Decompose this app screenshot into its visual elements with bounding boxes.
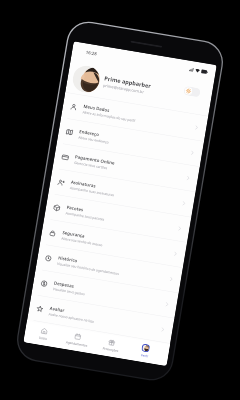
staticText: Meus Dados (83, 103, 110, 113)
button[interactable]: Início (25, 321, 62, 346)
staticText: Endereço (79, 128, 100, 137)
staticText: Perfil (140, 353, 149, 358)
staticText: Agendamentos (66, 340, 88, 347)
staticText: Altere as informações do seu perfil (82, 110, 136, 123)
staticText: Avalie nosso aplicativo na loja (48, 312, 94, 323)
staticText: Avaliar (49, 305, 65, 313)
staticText: Despesas (53, 280, 75, 289)
button[interactable]: Avaliar (27, 294, 174, 344)
staticText: Visualize seu histórico de agendamentos (57, 261, 120, 276)
staticText: 16:28 (85, 49, 98, 57)
button[interactable]: Agendamentos (59, 327, 96, 352)
staticText: Altere sua senha de acesso (61, 236, 103, 247)
button[interactable]: Endereço (57, 118, 204, 167)
staticText: Segurança (62, 229, 85, 239)
staticText: Assinaturas (70, 179, 96, 189)
button[interactable]: Pagamento Online (52, 143, 200, 192)
staticText: Prime appbarber (104, 74, 152, 90)
button[interactable]: Segurança (40, 219, 187, 268)
staticText: prime@starapp.com.br (103, 83, 145, 95)
staticText: Acompanhe suas assinaturas (70, 185, 114, 197)
staticText: Pacotes (66, 204, 84, 213)
button[interactable]: Alternar tema (183, 86, 201, 97)
button[interactable]: Despesas (31, 269, 179, 318)
staticText: Promoções (102, 346, 119, 353)
staticText: Visualize seus gastos (53, 286, 85, 296)
staticText: Altere seu endereço (78, 135, 109, 144)
staticText: Início (39, 336, 47, 341)
staticText: Histórico (58, 254, 78, 264)
button[interactable]: Pacotes (44, 193, 191, 243)
staticText: Acompanhe seus pacotes (65, 211, 105, 221)
button[interactable]: Perfil (127, 338, 164, 363)
staticText: Pagamento Online (75, 153, 115, 166)
button[interactable]: Histórico (36, 244, 183, 293)
button[interactable]: Promoções (93, 332, 130, 357)
button[interactable]: Assinaturas (48, 168, 195, 217)
button[interactable]: Meus Dados (61, 92, 208, 142)
staticText: Gerencie seus cartões (74, 160, 108, 170)
